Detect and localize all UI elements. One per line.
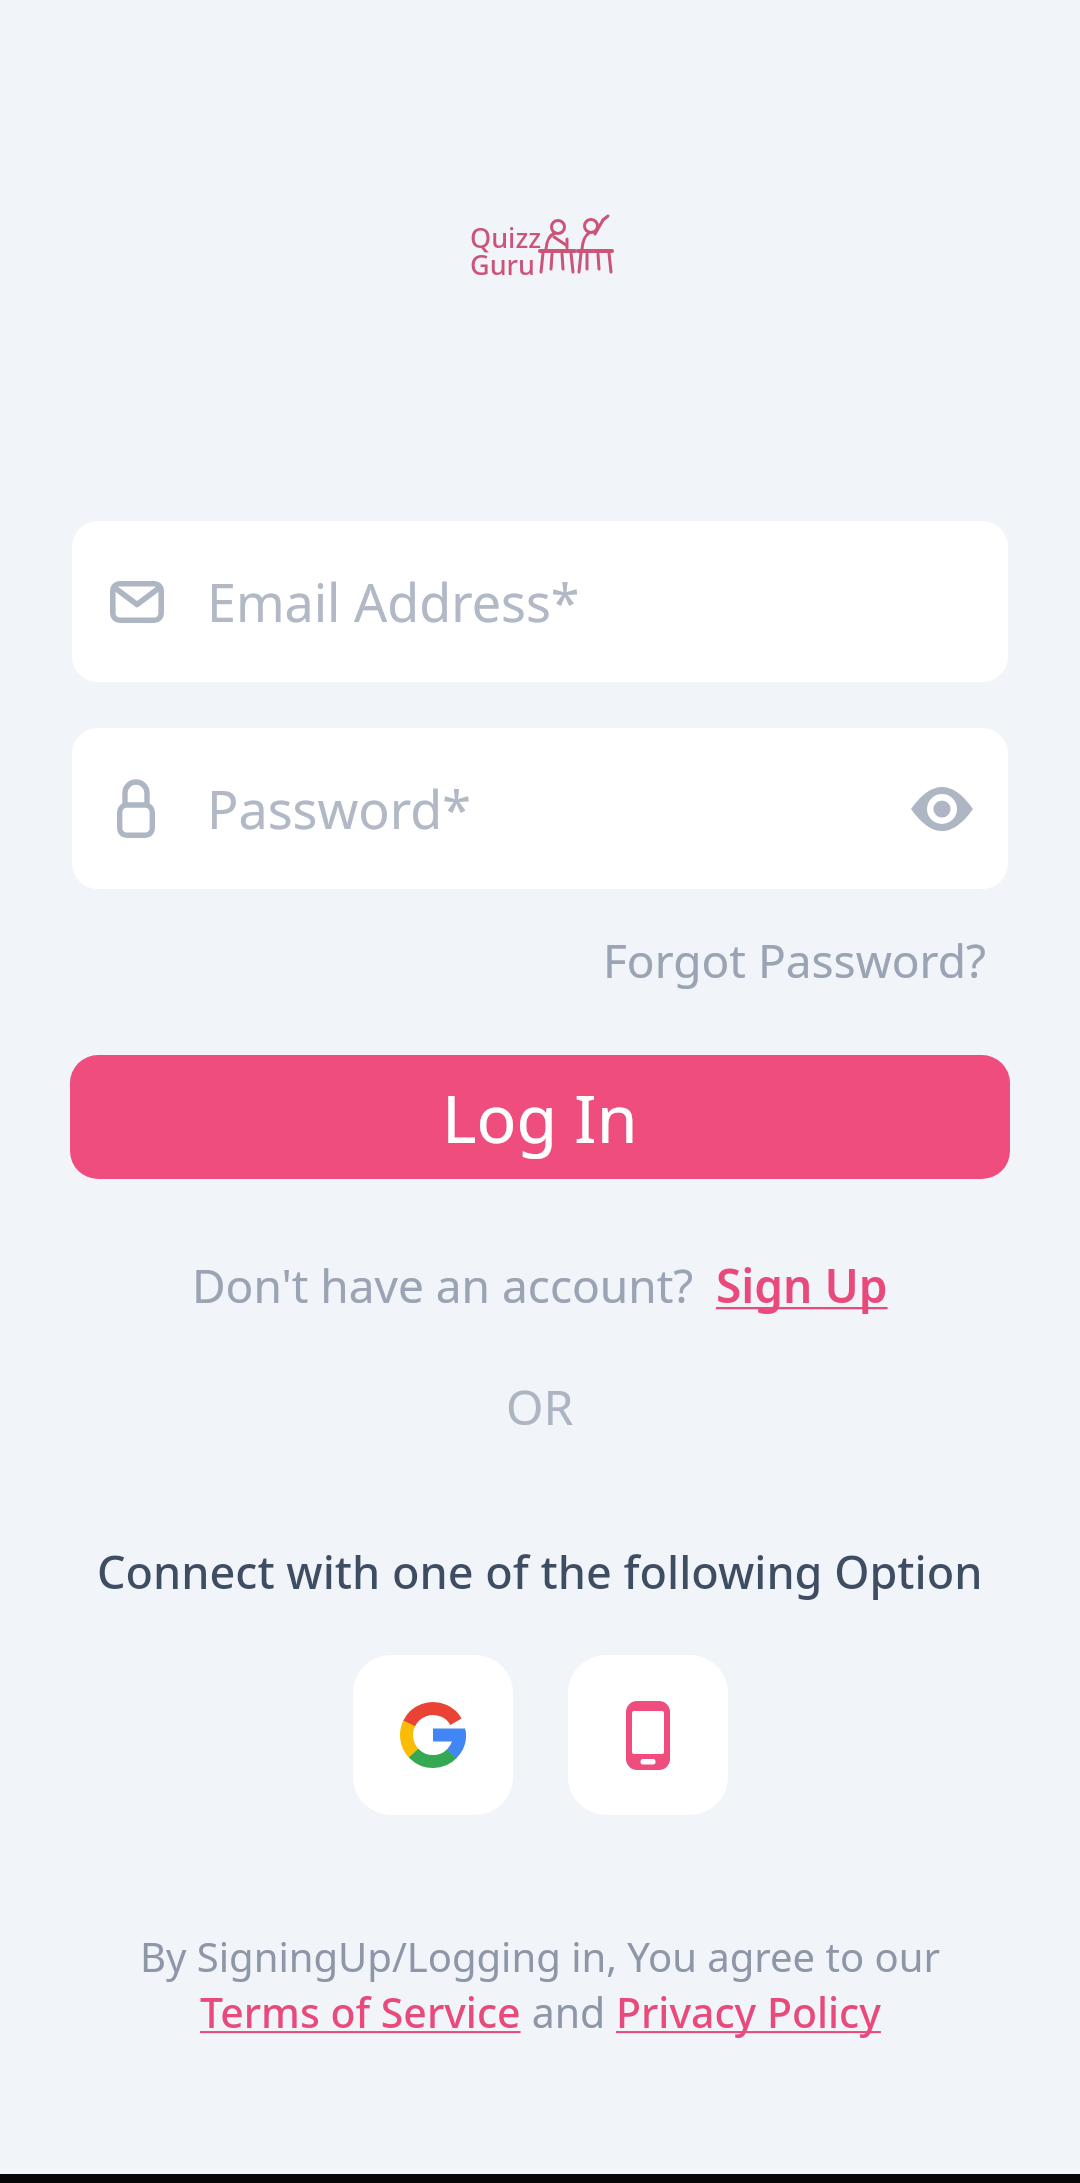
staticText: Don't have an account? (192, 1254, 694, 1317)
button[interactable] (353, 1655, 513, 1815)
staticText: Log In (442, 1072, 638, 1162)
staticText: By SigningUp/Logging in, You agree to ou… (140, 1929, 941, 1983)
staticText: OR (506, 1374, 574, 1438)
button[interactable]: Email Address* (72, 521, 1008, 682)
button[interactable]: Privacy Policy (616, 1984, 881, 2040)
staticText: Quizz Guru (470, 219, 542, 283)
button[interactable]: Password* (72, 728, 1008, 889)
staticText: Connect with one of the following Option (97, 1541, 983, 1602)
staticText: Password* (207, 773, 471, 844)
button[interactable]: Forgot Password? (603, 929, 986, 992)
button[interactable]: Sign Up (716, 1254, 888, 1317)
staticText: Email Address* (207, 566, 580, 637)
button[interactable]: Terms of Service (200, 1984, 521, 2040)
button[interactable] (568, 1655, 728, 1815)
staticText: and (521, 1984, 616, 2040)
button[interactable]: Log In (70, 1055, 1010, 1179)
